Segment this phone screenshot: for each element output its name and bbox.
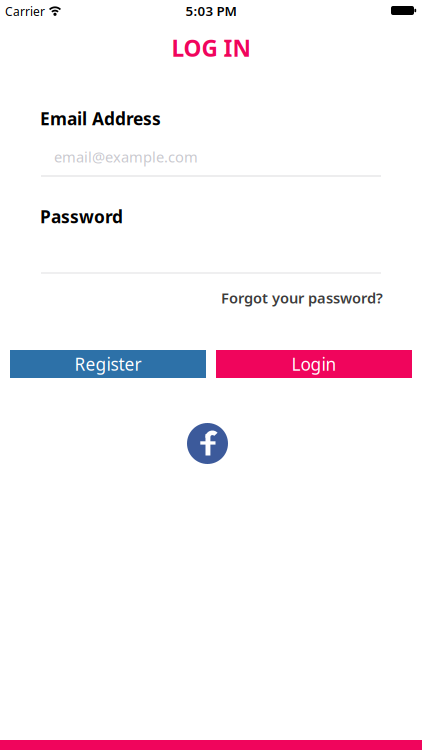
button[interactable]: Forgot your password? [221, 288, 383, 307]
staticText: Password [40, 205, 123, 228]
staticText: email@example.com [54, 147, 198, 166]
button[interactable]: Login [216, 350, 412, 378]
staticText: LOG IN [171, 33, 250, 63]
button[interactable]: Log in with Facebook [187, 423, 228, 464]
staticText: 5:03 PM [185, 2, 236, 20]
staticText: Carrier [5, 3, 45, 19]
staticText: Forgot your password? [221, 288, 383, 307]
staticText: Register [74, 352, 141, 375]
button[interactable]: Register [10, 350, 206, 378]
staticText: Email Address [40, 107, 161, 130]
staticText: Login [291, 352, 336, 375]
